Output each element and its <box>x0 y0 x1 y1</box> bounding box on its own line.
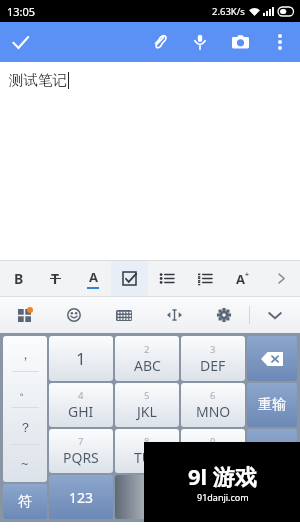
staticText: ？ <box>19 419 32 435</box>
button[interactable]: 。 <box>3 372 47 408</box>
button[interactable]: ， <box>3 336 47 372</box>
button[interactable]: Bold <box>0 261 37 296</box>
button[interactable]: Checklist <box>111 261 148 296</box>
staticText: 3 <box>210 343 216 356</box>
button[interactable]: Text color <box>74 261 111 296</box>
staticText: TUV <box>134 448 161 467</box>
button[interactable] <box>115 383 179 427</box>
staticText: A <box>89 268 98 286</box>
staticText: ~ <box>21 455 29 473</box>
button[interactable]: Voice <box>180 22 220 62</box>
button[interactable]: Attach <box>140 22 180 62</box>
staticText: 重输 <box>258 396 286 414</box>
staticText: JKL <box>137 402 157 421</box>
button[interactable]: Bulleted list <box>148 261 186 296</box>
button[interactable]: Numbered list <box>186 261 224 296</box>
staticText: 6 <box>210 389 216 402</box>
staticText: 13:05 <box>7 4 36 19</box>
button[interactable] <box>181 429 245 473</box>
staticText: 8 <box>144 435 150 448</box>
staticText: DEF <box>200 356 226 375</box>
staticText: GHI <box>68 402 94 421</box>
staticText: WXYZ <box>194 448 232 467</box>
button[interactable] <box>181 383 245 427</box>
button[interactable]: Space <box>115 475 245 519</box>
button[interactable] <box>49 475 113 519</box>
staticText: 5 <box>144 389 150 402</box>
staticText: 符 <box>18 493 32 511</box>
button[interactable]: Strikethrough <box>37 261 74 296</box>
staticText: 测试笔记 <box>9 71 67 89</box>
button[interactable] <box>247 383 297 427</box>
button[interactable]: Done <box>0 22 40 62</box>
staticText: + <box>245 270 250 280</box>
staticText: ， <box>19 346 32 362</box>
staticText: 2 <box>144 343 150 356</box>
button[interactable] <box>49 383 113 427</box>
button[interactable] <box>115 336 179 381</box>
staticText: A <box>236 270 245 288</box>
staticText: B <box>14 269 24 288</box>
staticText: PQRS <box>63 448 99 467</box>
staticText: 。 <box>19 382 32 398</box>
button[interactable]: Camera <box>220 22 260 62</box>
staticText: 1 <box>76 347 86 370</box>
staticText: 9l 游戏 <box>188 461 257 491</box>
button[interactable]: 测试笔记 <box>0 62 300 260</box>
button[interactable]: Apps <box>0 297 49 333</box>
button[interactable]: Cursor move <box>149 297 199 333</box>
button[interactable] <box>49 336 113 381</box>
button[interactable] <box>181 336 245 381</box>
staticText: 91danji.com <box>197 491 249 503</box>
button[interactable] <box>115 429 179 473</box>
button[interactable]: Hide keyboard <box>250 297 300 333</box>
staticText: 0 <box>267 440 277 463</box>
button[interactable] <box>247 429 297 473</box>
button[interactable] <box>3 484 47 519</box>
button[interactable]: Font size <box>224 261 262 296</box>
button[interactable]: ？ <box>3 408 47 445</box>
staticText: 4 <box>78 389 84 402</box>
staticText: T <box>51 269 60 288</box>
staticText: 7 <box>78 435 84 448</box>
button[interactable]: Emoji <box>49 297 99 333</box>
button[interactable]: More options <box>260 22 300 62</box>
button[interactable]: Keyboard layout <box>99 297 149 333</box>
staticText: 2.63K/s <box>212 5 245 18</box>
button[interactable]: Backspace <box>247 336 297 381</box>
staticText: MNO <box>196 402 231 421</box>
button[interactable] <box>49 429 113 473</box>
staticText: 123 <box>69 488 94 507</box>
button[interactable]: More formatting <box>262 261 300 296</box>
button[interactable]: Enter <box>247 475 297 519</box>
button[interactable]: ~ <box>3 445 47 482</box>
button[interactable]: Settings <box>199 297 249 333</box>
staticText: ABC <box>134 356 161 375</box>
staticText: 9 <box>210 435 216 448</box>
